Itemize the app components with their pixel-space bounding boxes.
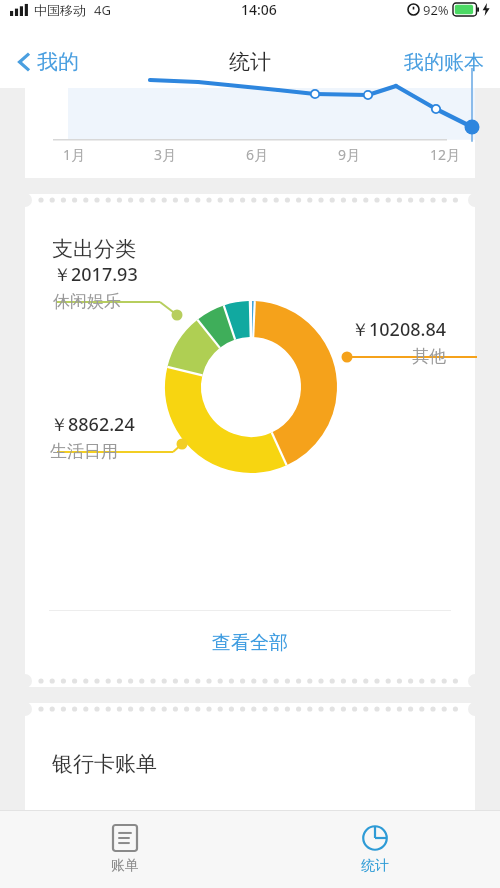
staticText: 其他 — [412, 346, 446, 367]
staticText: 14:06 — [241, 0, 277, 19]
staticText: 银行卡账单 — [52, 751, 157, 777]
button[interactable]: 统计 — [250, 810, 500, 888]
staticText: 4G — [94, 1, 111, 19]
button[interactable]: 我的 — [18, 49, 79, 75]
staticText: 我的 — [37, 49, 79, 75]
staticText: ￥10208.84 — [351, 317, 446, 342]
staticText: 9月 — [338, 145, 361, 164]
staticText: 3月 — [154, 145, 177, 164]
button[interactable]: 查看全部 — [25, 611, 475, 675]
staticText: 12月 — [430, 145, 461, 164]
staticText: ￥8862.24 — [50, 412, 135, 437]
button[interactable]: 我的账本 — [404, 50, 484, 75]
staticText: 生活日用 — [50, 441, 118, 462]
button[interactable]: 账单 — [0, 810, 250, 888]
staticText: 账单 — [111, 857, 139, 875]
staticText: 92% — [423, 1, 449, 19]
staticText: 休闲娱乐 — [53, 291, 121, 312]
staticText: 支出分类 — [52, 236, 136, 262]
staticText: 1月 — [63, 145, 86, 164]
staticText: ￥2017.93 — [53, 262, 138, 287]
staticText: 6月 — [246, 145, 269, 164]
staticText: 统计 — [229, 49, 271, 75]
staticText: 统计 — [361, 857, 389, 875]
staticText: 查看全部 — [212, 631, 288, 655]
staticText: 中国移动 — [34, 2, 86, 18]
